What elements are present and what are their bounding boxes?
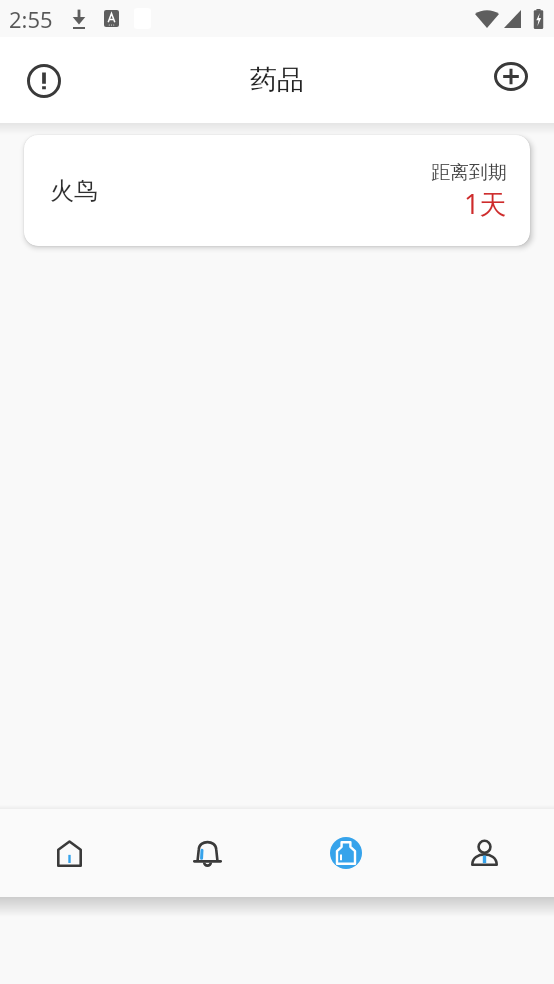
staticText: 1天 (464, 185, 507, 222)
button[interactable]: Medicine (276, 809, 415, 897)
staticText: 距离到期 (431, 161, 507, 185)
button[interactable]: Profile (415, 809, 554, 897)
staticText: 2:55 (9, 4, 53, 34)
button[interactable]: 火鸟 (24, 135, 530, 246)
staticText: 药品 (250, 63, 304, 97)
button[interactable]: Reminders (138, 809, 276, 897)
staticText: 火鸟 (50, 176, 98, 206)
button[interactable]: Info (13, 50, 74, 111)
button[interactable]: Home (0, 809, 138, 897)
button[interactable]: Add (480, 50, 541, 111)
